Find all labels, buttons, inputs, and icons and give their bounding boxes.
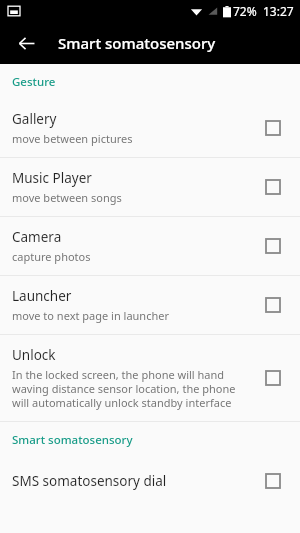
button[interactable]: Launcher	[0, 276, 300, 334]
staticText: capture photos	[12, 249, 91, 264]
staticText: 72%	[233, 3, 257, 19]
button[interactable]: Gallery	[0, 99, 300, 157]
staticText: move to next page in launcher	[12, 308, 169, 323]
button[interactable]: Toggle Gallery	[260, 115, 286, 141]
staticText: Unlock	[12, 346, 56, 364]
button[interactable]: Unlock	[0, 335, 300, 421]
staticText: Smart somatosensory	[58, 33, 216, 53]
staticText: 13:27	[263, 3, 294, 19]
staticText: Music Player	[12, 169, 92, 187]
staticText: Camera	[12, 228, 62, 246]
staticText: move between pictures	[12, 131, 133, 146]
staticText: move between songs	[12, 190, 122, 205]
button[interactable]: Back	[10, 27, 42, 59]
staticText: Gesture	[12, 74, 56, 90]
button[interactable]: Camera	[0, 217, 300, 275]
staticText: In the locked screen, the phone will han…	[12, 367, 248, 410]
button[interactable]: Music Player	[0, 158, 300, 216]
button[interactable]: Toggle Unlock	[260, 365, 286, 391]
button[interactable]: Toggle Camera	[260, 233, 286, 259]
staticText: Smart somatosensory	[12, 432, 133, 448]
button[interactable]: SMS somatosensory dial	[0, 457, 300, 505]
staticText: Launcher	[12, 287, 72, 305]
staticText: Gallery	[12, 110, 57, 128]
button[interactable]: Toggle SMS somatosensory dial	[260, 468, 286, 494]
button[interactable]: Toggle Music Player	[260, 174, 286, 200]
button[interactable]: Toggle Launcher	[260, 292, 286, 318]
staticText: SMS somatosensory dial	[12, 472, 167, 490]
